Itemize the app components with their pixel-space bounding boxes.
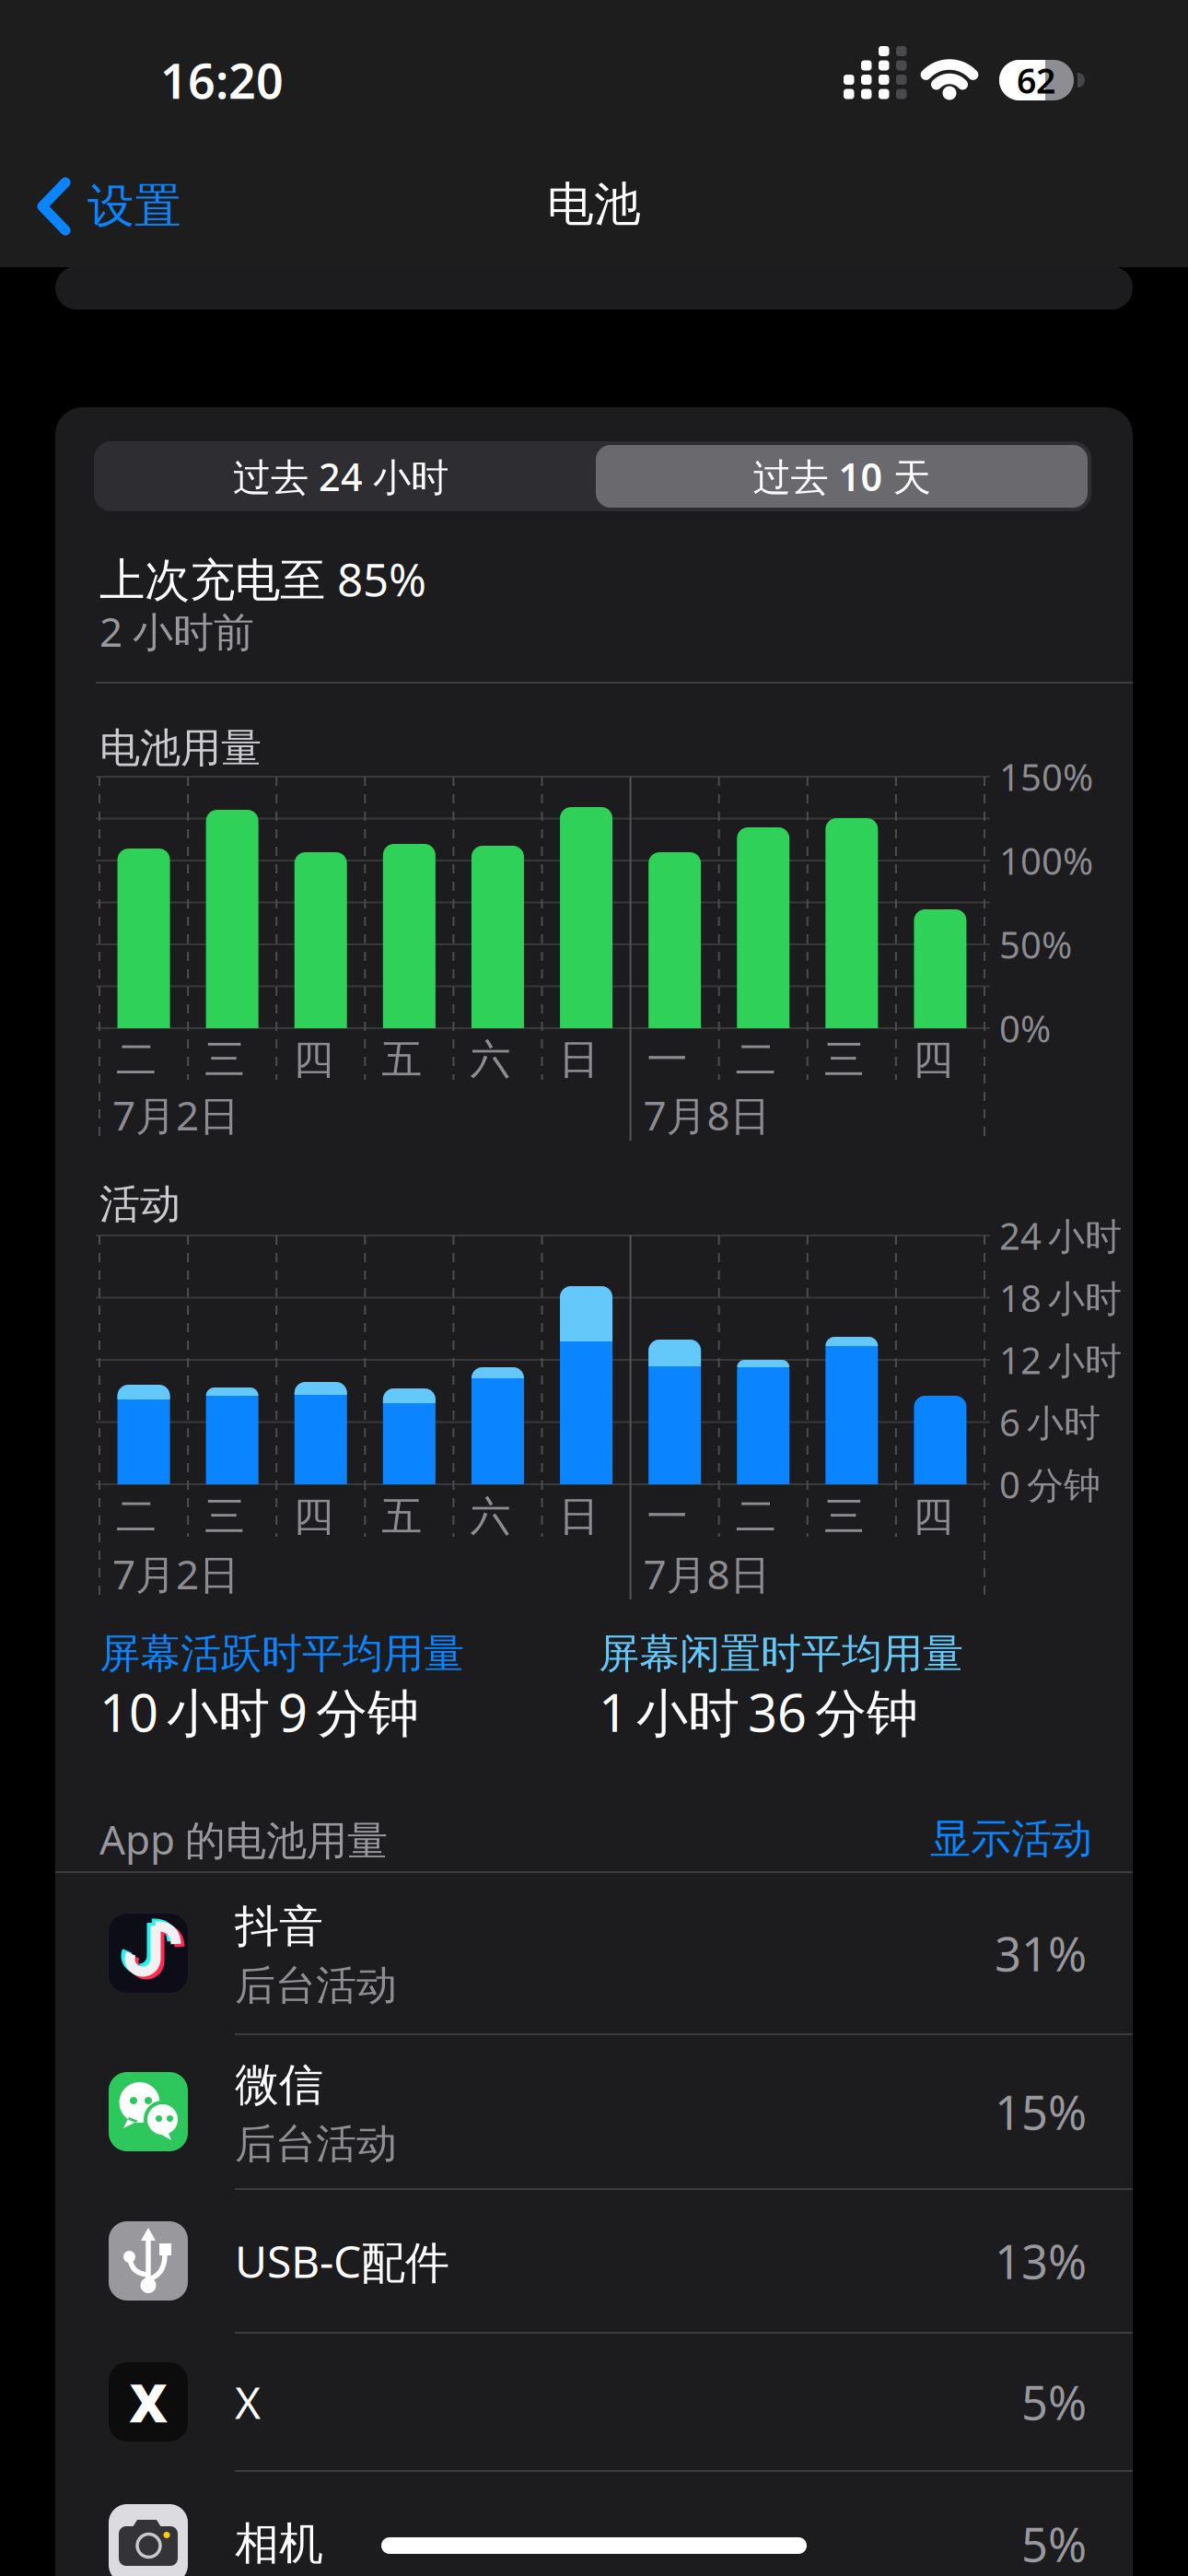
staticText: 一 [647, 1492, 688, 1541]
staticText: 31% [995, 1922, 1087, 1984]
staticText: 2 小时前 [99, 604, 254, 658]
staticText: 六 [470, 1492, 511, 1541]
staticText: 上次充电至 85% [99, 548, 426, 609]
staticText: App 的电池用量 [99, 1812, 388, 1866]
staticText: 日 [559, 1035, 599, 1084]
staticText: 屏幕闲置时平均用量 [599, 1629, 963, 1679]
staticText: 12 小时 [999, 1335, 1122, 1384]
staticText: 三 [824, 1492, 865, 1541]
staticText: 三 [205, 1035, 245, 1084]
staticText: 0 分钟 [999, 1460, 1101, 1509]
staticText: 五 [382, 1492, 422, 1541]
button[interactable]: 微信 [55, 2034, 1133, 2189]
staticText: 100% [999, 836, 1093, 885]
staticText: 后台活动 [235, 2119, 397, 2169]
staticText: 1 小时 36 分钟 [599, 1678, 918, 1746]
staticText: 过去 10 天 [753, 451, 931, 502]
staticText: 屏幕活跃时平均用量 [99, 1629, 464, 1679]
staticText: 五 [382, 1035, 422, 1084]
staticText: 二 [116, 1492, 157, 1541]
staticText: 5% [1021, 2513, 1087, 2575]
staticText: 四 [913, 1492, 953, 1541]
staticText: 二 [736, 1492, 776, 1541]
staticText: 7月8日 [643, 1088, 770, 1142]
staticText: 四 [913, 1035, 953, 1084]
staticText: 150% [999, 752, 1093, 801]
staticText: 日 [559, 1492, 599, 1541]
staticText: 二 [116, 1035, 157, 1084]
staticText: 一 [647, 1035, 688, 1084]
staticText: 10 小时 9 分钟 [99, 1678, 419, 1746]
staticText: 62 [1017, 57, 1055, 103]
staticText: 六 [470, 1035, 511, 1084]
button[interactable]: X [55, 2333, 1133, 2471]
staticText: 0% [999, 1004, 1051, 1053]
button[interactable]: USB-C配件 [55, 2189, 1133, 2333]
button[interactable]: 设置 [38, 170, 181, 243]
staticText: 50% [999, 920, 1072, 969]
staticText: 活动 [99, 1179, 181, 1229]
staticText: X [235, 2372, 261, 2431]
staticText: 7月8日 [643, 1547, 770, 1601]
staticText: 相机 [235, 2517, 323, 2571]
button[interactable]: 显示活动 [816, 1814, 1092, 1864]
staticText: 15% [995, 2081, 1087, 2143]
staticText: 电池 [547, 176, 641, 233]
staticText: 6 小时 [999, 1398, 1101, 1446]
staticText: 7月2日 [112, 1088, 239, 1142]
staticText: 18 小时 [999, 1273, 1122, 1322]
staticText: 三 [824, 1035, 865, 1084]
button[interactable]: 过去 10 天 [594, 441, 1089, 511]
staticText: 7月2日 [112, 1547, 239, 1601]
staticText: 三 [205, 1492, 245, 1541]
staticText: 过去 24 小时 [233, 451, 448, 502]
staticText: 四 [293, 1035, 334, 1084]
staticText: 13% [995, 2230, 1087, 2292]
staticText: USB-C配件 [235, 2231, 449, 2290]
staticText: 抖音 [235, 1899, 323, 1954]
staticText: 后台活动 [235, 1961, 397, 2010]
staticText: 微信 [235, 2058, 323, 2112]
staticText: 电池用量 [99, 723, 262, 773]
staticText: 设置 [87, 178, 181, 235]
staticText: 16:20 [160, 48, 284, 112]
staticText: 二 [736, 1035, 776, 1084]
staticText: 24 小时 [999, 1211, 1122, 1260]
staticText: 5% [1021, 2371, 1087, 2433]
button[interactable]: 相机 [55, 2475, 1133, 2576]
button[interactable]: 抖音 [55, 1873, 1133, 2033]
staticText: 显示活动 [930, 1814, 1092, 1864]
staticText: X [129, 2367, 167, 2437]
button[interactable]: 过去 24 小时 [94, 441, 588, 511]
staticText: 四 [293, 1492, 334, 1541]
